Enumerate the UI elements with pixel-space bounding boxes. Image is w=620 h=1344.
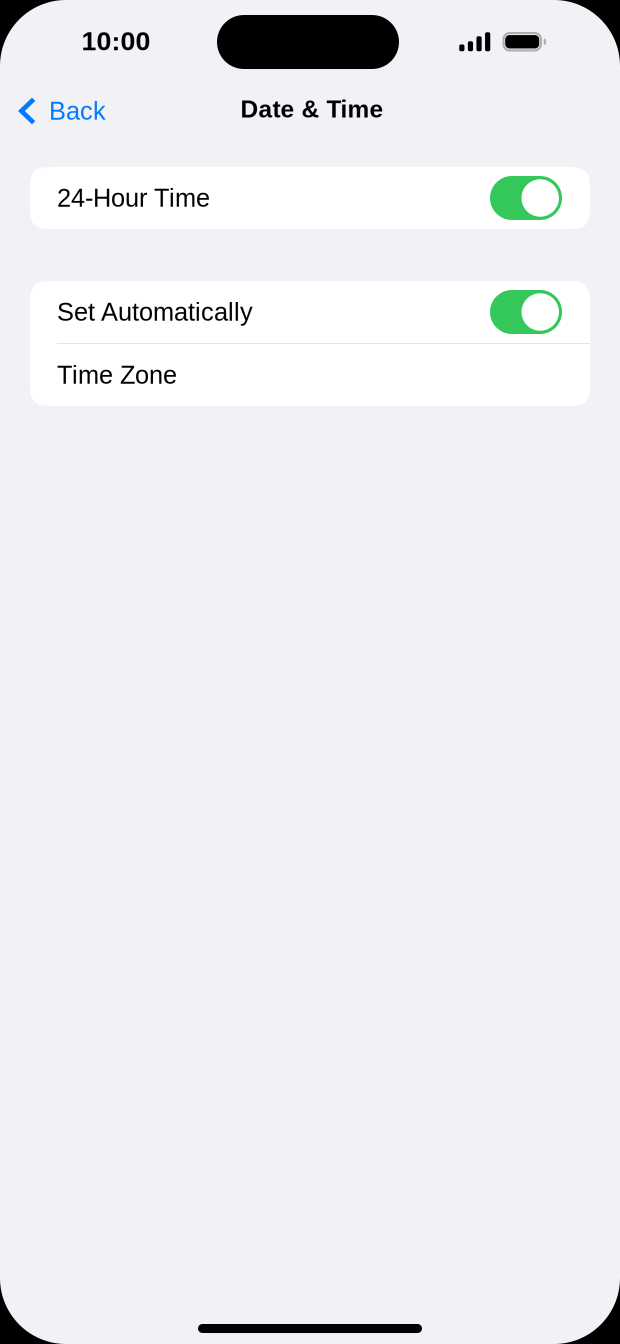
staticText: 10:00 [81,26,150,56]
button[interactable]: Back [8,83,124,139]
button[interactable]: Time Zone [30,344,590,406]
staticText: 24-Hour Time [57,184,210,212]
staticText: Back [49,97,106,125]
button[interactable]: Set Automatically [30,281,590,343]
staticText: Time Zone [57,361,177,389]
button[interactable]: 24-Hour Time [30,167,590,229]
staticText: Set Automatically [57,298,253,326]
staticText: Date & Time [240,95,383,123]
